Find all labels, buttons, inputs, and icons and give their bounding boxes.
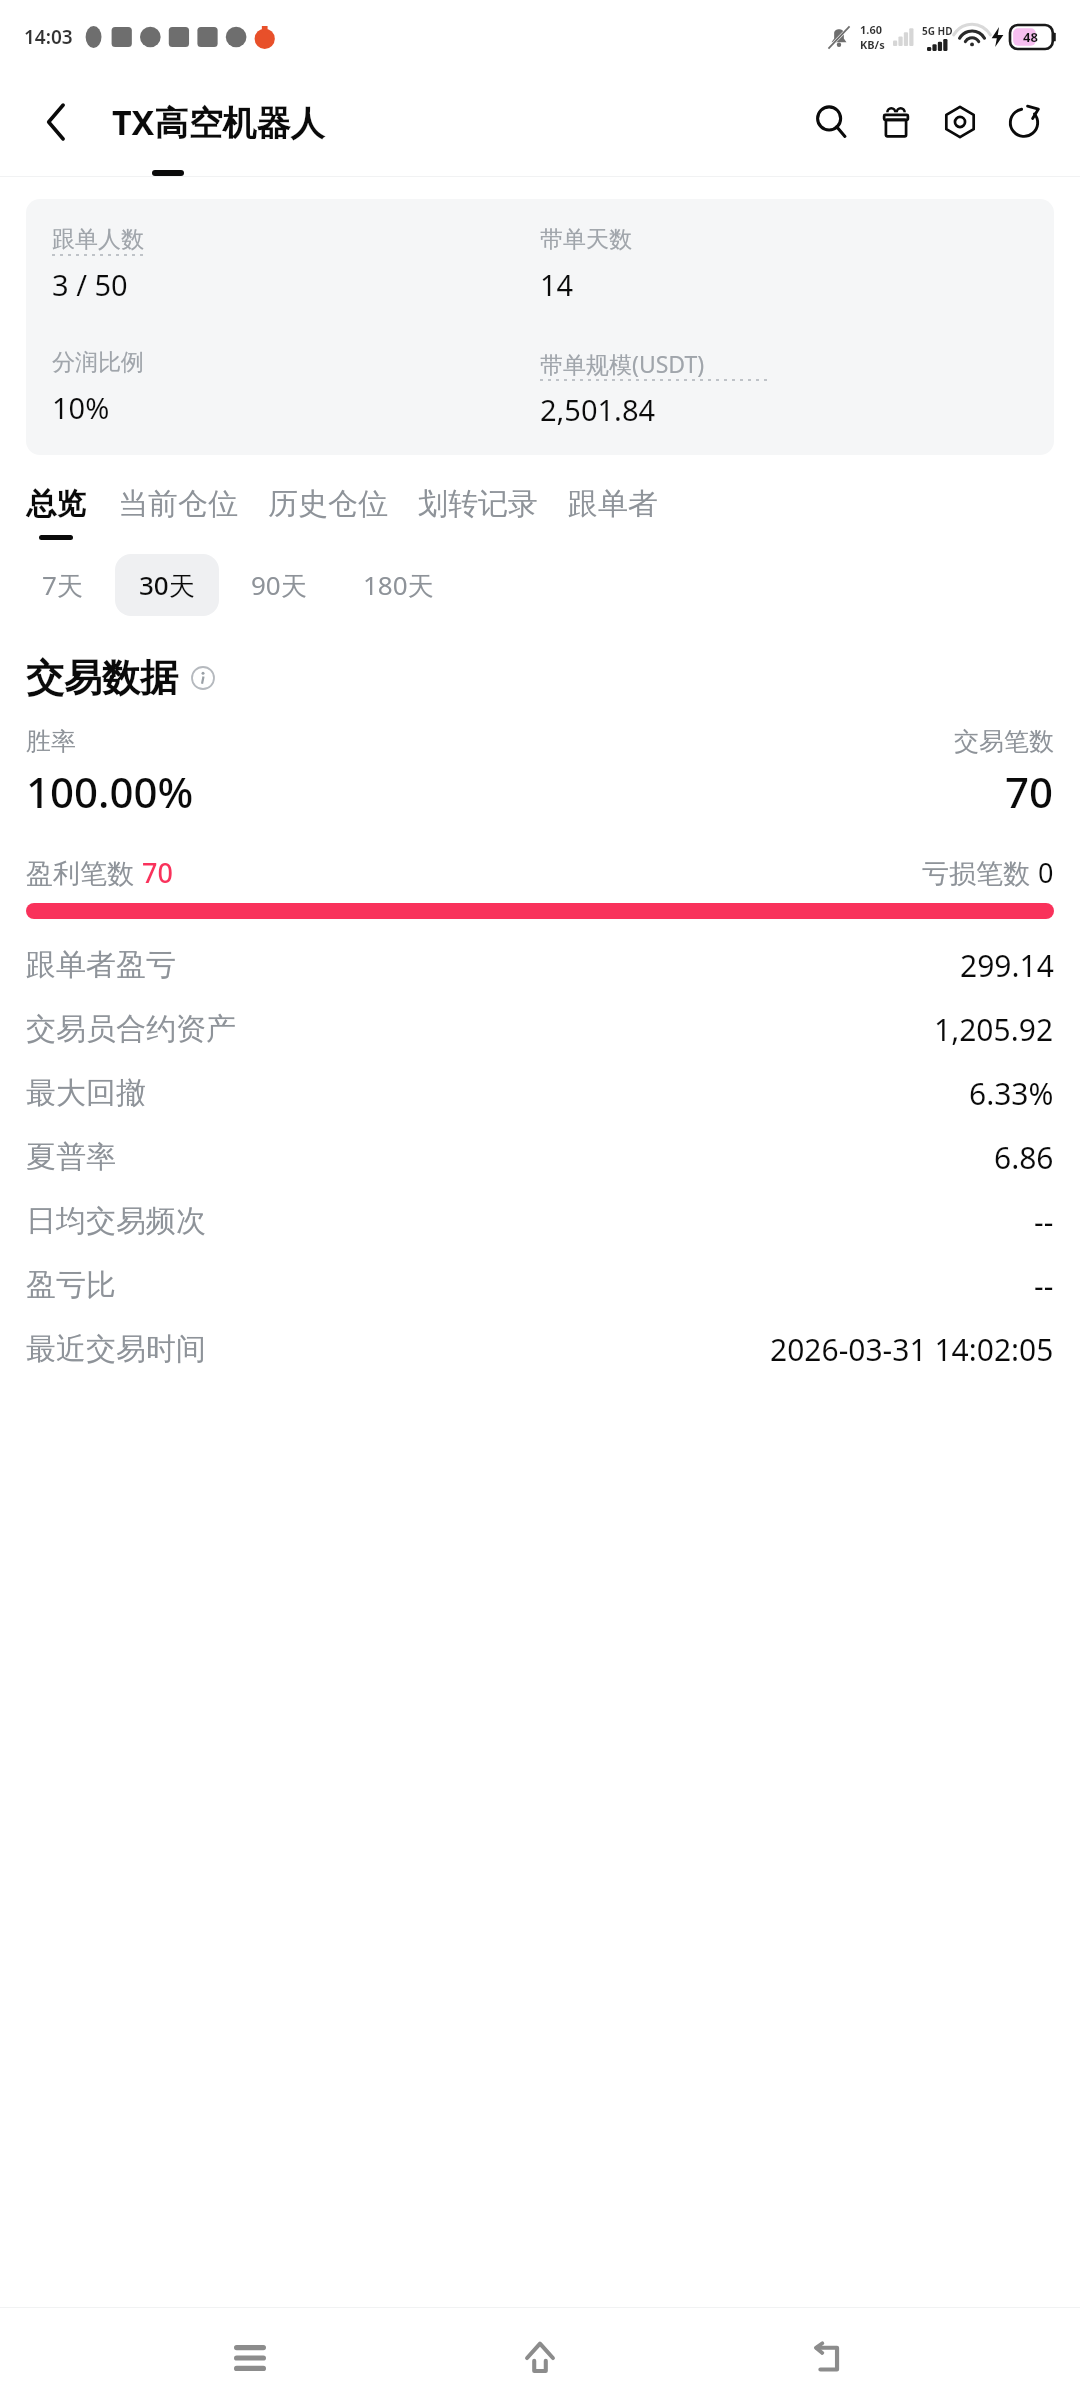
button[interactable]: 180天 — [339, 554, 458, 616]
staticText: 跟单者 — [568, 485, 658, 523]
staticText: 日均交易频次 — [26, 1202, 206, 1240]
staticText: 跟单人数 — [52, 225, 144, 254]
staticText: 带单天数 — [540, 225, 632, 254]
button[interactable]: 日均交易频次 — [26, 1189, 1054, 1253]
button[interactable]: Share — [1002, 100, 1046, 144]
staticText: 最近交易时间 — [26, 1330, 206, 1368]
button[interactable]: Back — [790, 2318, 870, 2398]
button[interactable]: 跟单者 — [568, 485, 658, 535]
staticText: 2026-03-31 14:02:05 — [770, 1329, 1054, 1370]
button[interactable]: 7天 — [18, 554, 107, 616]
staticText: 100.00% — [26, 763, 194, 820]
button[interactable]: 交易员合约资产 — [26, 997, 1054, 1061]
staticText: 最大回撤 — [26, 1074, 146, 1112]
staticText: 当前仓位 — [118, 485, 238, 523]
staticText: 分润比例 — [52, 348, 144, 377]
button[interactable]: 盈亏比 — [26, 1253, 1054, 1317]
button[interactable]: 历史仓位 — [268, 485, 388, 535]
staticText: 总览 — [26, 485, 86, 523]
staticText: 夏普率 — [26, 1138, 116, 1176]
staticText: 180天 — [363, 567, 434, 603]
button[interactable]: 夏普率 — [26, 1125, 1054, 1189]
staticText: 2,501.84 — [540, 390, 656, 429]
staticText: 70 — [142, 854, 173, 891]
button[interactable]: Settings — [938, 100, 982, 144]
staticText: 70 — [1005, 763, 1054, 820]
button[interactable]: 最近交易时间 — [26, 1317, 1054, 1381]
staticText: TX高空机器人 — [112, 99, 325, 145]
button[interactable]: 划转记录 — [418, 485, 538, 535]
button[interactable]: 跟单者盈亏 — [26, 933, 1054, 997]
staticText: 划转记录 — [418, 485, 538, 523]
staticText: 5G HD — [922, 24, 953, 38]
button[interactable]: Recents — [210, 2318, 290, 2398]
staticText: 1,205.92 — [934, 1009, 1054, 1050]
button[interactable]: Search — [810, 100, 854, 144]
button[interactable]: Home — [500, 2318, 580, 2398]
staticText: 交易员合约资产 — [26, 1010, 236, 1048]
staticText: -- — [1034, 1265, 1054, 1306]
staticText: -- — [1034, 1201, 1054, 1242]
button[interactable]: Rewards — [874, 100, 918, 144]
button[interactable]: 最大回撤 — [26, 1061, 1054, 1125]
staticText: 1.60 — [860, 22, 882, 37]
staticText: 90天 — [251, 567, 307, 603]
staticText: 盈利笔数 — [26, 854, 142, 891]
staticText: 带单规模(USDT) — [540, 348, 705, 379]
staticText: 7天 — [42, 567, 83, 603]
staticText: KB/s — [860, 37, 885, 52]
staticText: 14:03 — [24, 24, 73, 50]
button[interactable]: 90天 — [227, 554, 331, 616]
staticText: 交易数据 — [26, 654, 178, 702]
staticText: 历史仓位 — [268, 485, 388, 523]
staticText: 盈亏比 — [26, 1266, 116, 1304]
staticText: 30天 — [139, 567, 195, 603]
button[interactable]: Back — [46, 100, 90, 144]
staticText: 10% — [52, 388, 110, 427]
staticText: 跟单者盈亏 — [26, 946, 176, 984]
staticText: 0 — [1038, 854, 1054, 891]
button[interactable]: 30天 — [115, 554, 219, 616]
button[interactable]: 总览 — [26, 485, 86, 540]
button[interactable]: 当前仓位 — [118, 485, 238, 535]
staticText: 48 — [1023, 28, 1038, 46]
staticText: 14 — [540, 265, 574, 304]
staticText: 299.14 — [960, 945, 1054, 986]
staticText: 交易笔数 — [954, 726, 1054, 757]
button[interactable]: Info — [190, 665, 216, 691]
staticText: 3 / 50 — [52, 265, 128, 304]
staticText: 6.33% — [969, 1073, 1054, 1114]
staticText: 6.86 — [994, 1137, 1054, 1178]
staticText: 胜率 — [26, 726, 76, 757]
staticText: 亏损笔数 — [922, 854, 1038, 891]
